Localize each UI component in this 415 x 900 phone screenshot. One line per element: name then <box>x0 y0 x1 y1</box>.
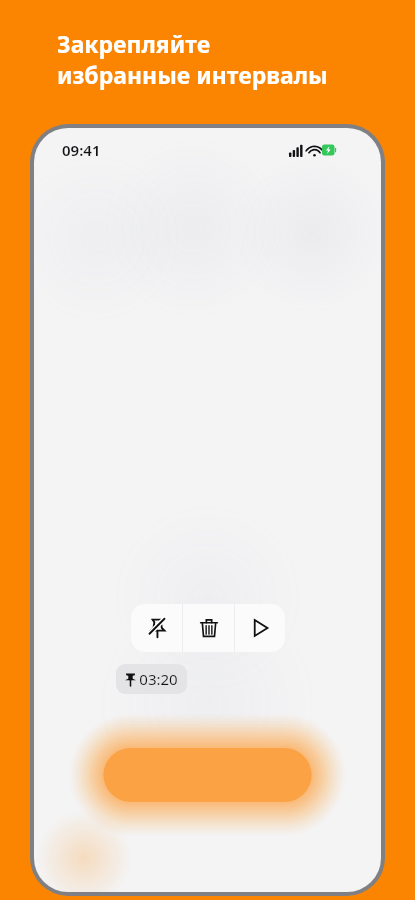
staticText: избранные интервалы <box>57 59 328 90</box>
staticText: Закрепляйте <box>57 28 211 59</box>
staticText: 03:20 <box>139 669 178 689</box>
button[interactable]: 03:20 <box>116 664 187 694</box>
button[interactable]: Play <box>235 604 285 652</box>
button[interactable]: Unpin <box>131 604 182 652</box>
staticText: 09:41 <box>62 140 101 160</box>
button[interactable]: Delete <box>183 604 234 652</box>
